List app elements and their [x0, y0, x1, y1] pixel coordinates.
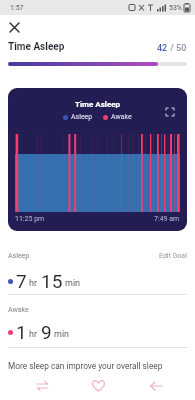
staticText: 42: [157, 43, 168, 54]
staticText: 9: [41, 321, 52, 343]
staticText: 7:49 am: [154, 215, 180, 223]
button[interactable]: [5, 18, 23, 36]
staticText: hr: [29, 278, 38, 289]
staticText: Time Asleep: [75, 100, 121, 109]
button[interactable]: 1: [8, 321, 70, 343]
staticText: / 50: [168, 43, 187, 54]
staticText: hr: [29, 329, 38, 340]
staticText: Edit Goal: [159, 252, 187, 260]
staticText: Awake: [111, 113, 132, 121]
staticText: 7: [16, 270, 27, 292]
staticText: min: [65, 278, 81, 289]
staticText: 15: [41, 270, 63, 292]
staticText: 1:57: [10, 4, 24, 12]
button[interactable]: [146, 376, 166, 396]
button[interactable]: [88, 376, 108, 396]
button[interactable]: Edit Goal: [159, 252, 187, 260]
button[interactable]: [32, 376, 52, 396]
staticText: Awake: [8, 306, 29, 314]
staticText: min: [54, 329, 70, 340]
button[interactable]: [162, 104, 178, 120]
staticText: Asleep: [8, 252, 30, 260]
staticText: 53%: [169, 4, 182, 12]
staticText: Asleep: [71, 113, 93, 121]
staticText: 1: [16, 321, 27, 343]
staticText: More sleep can improve your overall slee…: [8, 361, 163, 371]
staticText: Time Asleep: [8, 41, 65, 53]
button[interactable]: 7: [8, 270, 81, 292]
staticText: 11:25 pm: [15, 215, 45, 223]
